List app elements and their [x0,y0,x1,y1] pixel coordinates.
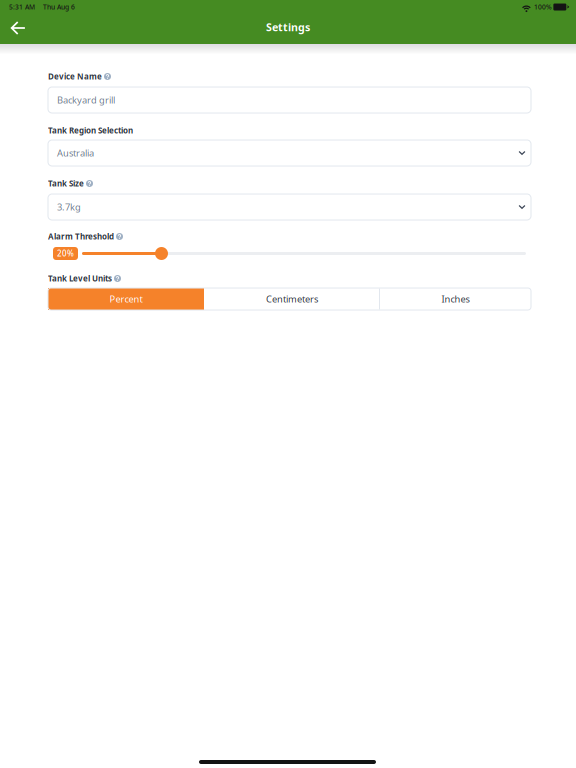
button[interactable]: Percent [48,288,204,310]
button[interactable]: Inches [380,288,531,310]
button[interactable]: Australia [48,140,531,166]
button[interactable]: 3.7kg [48,194,531,220]
staticText: 5:31 AM [9,3,35,11]
staticText: 100% [534,3,552,11]
button[interactable]: Centimeters [204,288,380,310]
staticText: Percent [109,293,142,305]
staticText: Device Name [48,71,102,82]
button[interactable]: Back [2,13,34,43]
staticText: Inches [441,293,469,305]
staticText: Tank Region Selection [48,125,133,136]
staticText: Settings [266,20,310,34]
button[interactable]: Backyard grill [48,87,531,113]
staticText: 20% [57,248,74,259]
staticText: Centimeters [266,293,318,305]
staticText: Australia [57,147,94,159]
staticText: Thu Aug 6 [43,3,75,11]
staticText: Alarm Threshold [48,231,114,242]
staticText: Backyard grill [57,94,115,106]
staticText: Tank Level Units [48,273,112,284]
staticText: Tank Size [48,178,84,189]
staticText: 3.7kg [57,201,81,213]
